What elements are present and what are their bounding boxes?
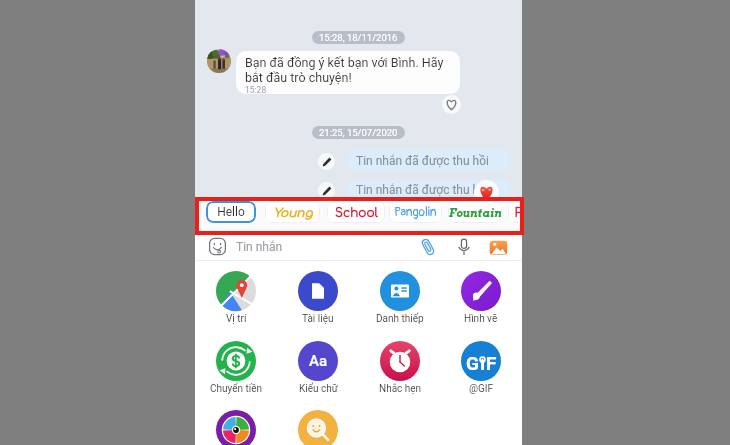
button[interactable]: Fun [508,201,522,223]
staticText: @GIF [469,383,494,395]
staticText: F [486,352,497,374]
button[interactable]: School [327,201,385,223]
button[interactable]: Vị trí [195,271,277,325]
button[interactable]: Hình vẽ [440,271,522,325]
button[interactable]: Fountain [448,201,502,223]
staticText: Chuyển tiền [210,383,263,395]
staticText: Bạn đã đồng ý kết bạn với Bình. Hãy bắt … [245,55,452,85]
staticText: Tin nhắn đã được thu hồi [356,183,489,197]
staticText: ı [480,352,486,374]
button[interactable]: Young [265,201,320,223]
staticText: 15:28, 18/11/2016 [319,32,398,43]
button[interactable]: Attach file [419,238,437,256]
staticText: Pangolin [394,205,437,220]
staticText: Fun [515,206,522,219]
button[interactable]: Emoji [208,237,227,256]
button[interactable]: More [277,410,359,445]
button[interactable]: More [195,410,277,445]
staticText: 15:28 [245,85,267,94]
button[interactable]: Pangolin [389,201,442,223]
staticText: Kiểu chữ [299,383,338,395]
staticText: Hello [217,205,245,219]
button[interactable]: Danh thiếp [359,271,441,325]
button[interactable]: Record voice message [455,238,473,256]
staticText: Vị trí [226,313,247,325]
staticText: Danh thiếp [376,313,424,325]
staticText: Tin nhắn đã được thu hồi [356,154,489,168]
button[interactable]: Nhắc hẹn [359,341,441,395]
button[interactable]: @GIF [440,341,522,395]
button[interactable]: Heart reaction [474,180,499,205]
staticText: School [335,206,378,219]
button[interactable]: React with heart [442,95,461,114]
staticText: Fountain [448,206,502,219]
staticText: G [466,352,479,374]
button[interactable]: Tài liệu [277,271,359,325]
button[interactable]: Chuyển tiền [195,341,277,395]
staticText: Nhắc hẹn [379,383,422,395]
staticText: Hình vẽ [464,313,498,325]
staticText: 21:25, 15/07/2020 [319,127,398,138]
button[interactable]: Send photo [489,238,508,257]
staticText: Tài liệu [302,313,334,325]
button[interactable]: Kiểu chữ [277,341,359,395]
staticText: Tin nhắn [236,240,283,254]
staticText: Aa [309,352,328,370]
staticText: Young [273,206,313,219]
button[interactable]: Hello [206,201,256,223]
